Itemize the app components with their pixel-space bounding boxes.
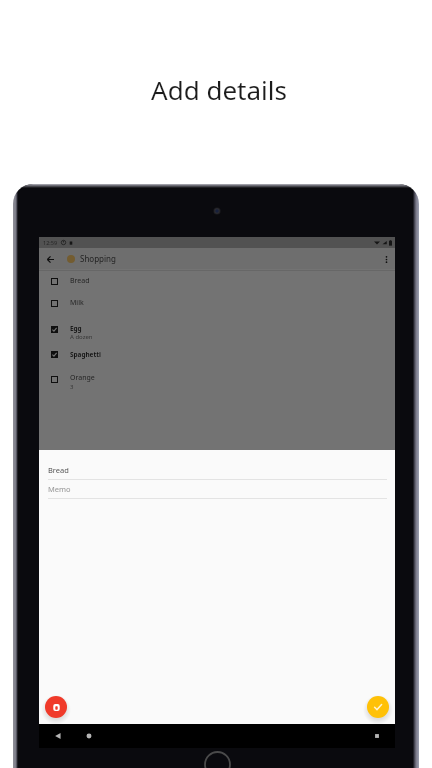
button[interactable]: Milk xyxy=(39,292,395,314)
staticText: Bread xyxy=(48,465,69,475)
button[interactable]: More options xyxy=(378,251,394,267)
staticText: Orange xyxy=(70,373,95,383)
staticText: Milk xyxy=(70,298,84,308)
staticText: Memo xyxy=(48,484,71,494)
button[interactable]: Save xyxy=(367,696,389,718)
button[interactable]: Delete xyxy=(45,696,67,718)
staticText: Bread xyxy=(70,276,90,286)
button[interactable]: Egg xyxy=(39,318,395,340)
button[interactable]: Home xyxy=(81,728,97,744)
staticText: Egg xyxy=(70,324,82,333)
button[interactable]: Orange xyxy=(39,368,395,390)
button[interactable]: Spaghetti xyxy=(39,343,395,365)
button[interactable]: Recents xyxy=(369,728,385,744)
button[interactable]: Bread xyxy=(39,270,395,292)
staticText: Shopping xyxy=(80,253,116,264)
staticText: A dozen xyxy=(70,333,93,341)
staticText: 12:59 xyxy=(43,239,58,246)
staticText: Spaghetti xyxy=(70,350,101,359)
staticText: Add details xyxy=(3,72,432,107)
button[interactable]: Back xyxy=(42,251,58,267)
staticText: 3 xyxy=(70,383,74,391)
button[interactable]: Back xyxy=(50,728,66,744)
